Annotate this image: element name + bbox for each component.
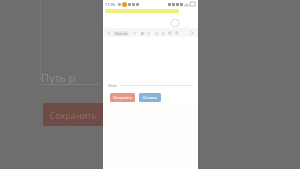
button[interactable]: Avatar (171, 19, 179, 27)
button[interactable]: Normal (113, 31, 129, 36)
button[interactable]: Bulleted list (167, 30, 173, 36)
button[interactable]: Путь р (41, 70, 76, 85)
staticText: Отправить (113, 95, 132, 100)
button[interactable]: More tools (189, 30, 195, 36)
button[interactable]: Alignment (174, 30, 180, 36)
staticText: I (148, 31, 150, 36)
button[interactable]: Previous tools (106, 30, 112, 36)
staticText: Сохранить (49, 109, 97, 121)
button[interactable]: Underline (153, 30, 159, 36)
button[interactable]: Strikethrough (160, 30, 166, 36)
staticText: 17:06 (105, 2, 116, 7)
staticText: Файл (108, 83, 118, 88)
staticText: U (155, 31, 158, 36)
staticText: Normal (115, 31, 128, 36)
button[interactable]: Italic (146, 30, 152, 36)
staticText: S (162, 31, 165, 36)
button[interactable]: Отправить (110, 93, 135, 102)
staticText: B (141, 31, 144, 36)
button[interactable]: Bold (139, 30, 145, 36)
button[interactable]: Font size (132, 30, 138, 36)
button[interactable]: Отмена (139, 93, 161, 102)
staticText: Отмена (143, 95, 157, 100)
button[interactable]: Сохранить (43, 103, 103, 126)
staticText: Путь р (41, 70, 76, 85)
